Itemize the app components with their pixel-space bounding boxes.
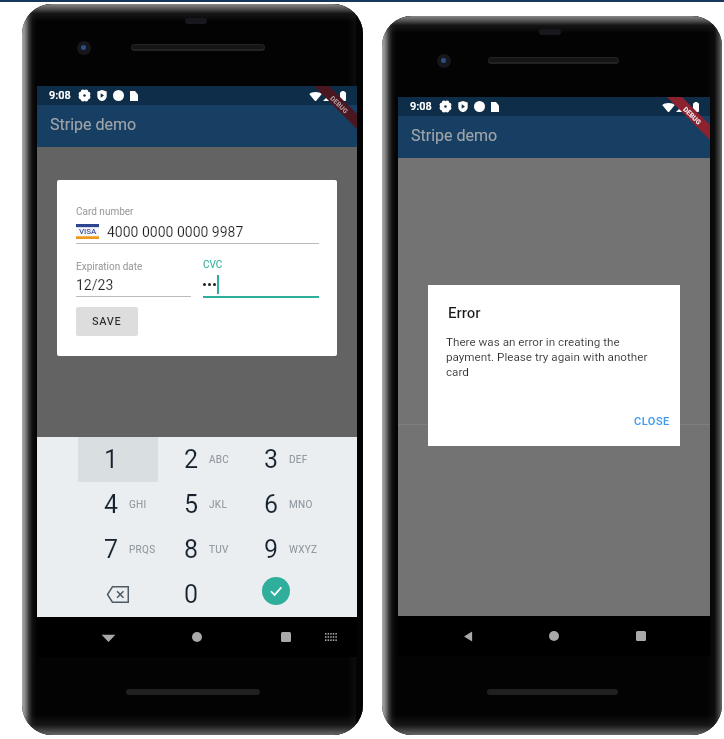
staticText: There was an error in creating the payme…: [446, 335, 658, 378]
button[interactable]: 3: [238, 437, 318, 482]
button[interactable]: Back: [84, 617, 132, 657]
staticText: SAVE: [92, 315, 122, 328]
staticText: PRQS: [129, 544, 156, 556]
staticText: 5: [184, 490, 199, 519]
button[interactable]: 0: [158, 572, 238, 617]
button[interactable]: Recents: [262, 617, 310, 657]
button[interactable]: CLOSE: [626, 408, 678, 435]
staticText: VISA: [79, 227, 97, 236]
button[interactable]: 5: [158, 482, 238, 527]
staticText: 9:08: [410, 100, 432, 113]
staticText: 12/23: [76, 277, 114, 293]
staticText: Stripe demo: [411, 126, 498, 145]
button[interactable]: SAVE: [76, 307, 138, 336]
staticText: ABC: [209, 454, 230, 466]
staticText: JKL: [209, 499, 228, 511]
button[interactable]: 6: [238, 482, 318, 527]
staticText: MNO: [289, 499, 313, 511]
staticText: Error: [448, 304, 481, 322]
button[interactable]: Backspace: [78, 572, 158, 617]
button[interactable]: Switch keyboard: [307, 617, 355, 657]
button[interactable]: 7: [78, 527, 158, 572]
button[interactable]: Recents: [617, 616, 665, 656]
button[interactable]: Home: [530, 616, 578, 656]
button[interactable]: Home: [173, 617, 221, 657]
staticText: Stripe demo: [50, 115, 137, 134]
button[interactable]: 9: [238, 527, 318, 572]
staticText: WXYZ: [289, 544, 318, 556]
staticText: 0: [184, 580, 199, 609]
button[interactable]: 8: [158, 527, 238, 572]
staticText: 6: [264, 490, 279, 519]
button[interactable]: 1: [78, 437, 158, 482]
staticText: TUV: [209, 544, 229, 556]
staticText: 3: [264, 445, 279, 474]
staticText: 8: [184, 535, 199, 564]
staticText: DEBUG: [328, 94, 350, 116]
button[interactable]: 2: [158, 437, 238, 482]
staticText: 2: [184, 445, 199, 474]
staticText: GHI: [129, 499, 147, 511]
staticText: 4000 0000 0000 9987: [107, 224, 244, 240]
staticText: DEF: [289, 454, 308, 466]
staticText: DEBUG: [681, 105, 703, 127]
staticText: 9:08: [49, 89, 71, 102]
staticText: 4: [104, 490, 119, 519]
button[interactable]: Back: [444, 616, 492, 656]
staticText: 7: [104, 535, 119, 564]
staticText: Card number: [76, 206, 134, 218]
button[interactable]: 4: [78, 482, 158, 527]
button[interactable]: Done: [262, 577, 290, 605]
staticText: CVC: [203, 259, 223, 271]
staticText: CLOSE: [634, 415, 670, 428]
staticText: 9: [264, 535, 279, 564]
staticText: 1: [104, 445, 119, 474]
staticText: Expiration date: [76, 261, 143, 273]
